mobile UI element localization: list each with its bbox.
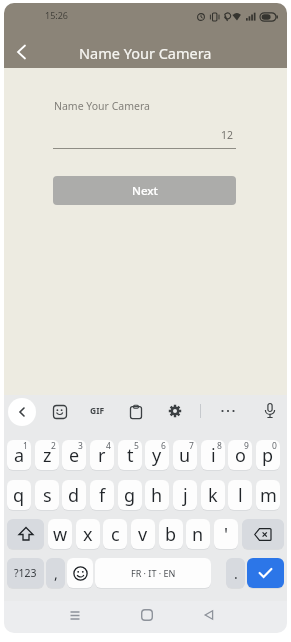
staticText: g (124, 483, 136, 508)
staticText: 6 (161, 440, 166, 452)
staticText: 15:26 (45, 9, 69, 21)
staticText: 3 (78, 440, 83, 452)
button[interactable]: o (228, 440, 252, 470)
staticText: 12 (221, 128, 234, 142)
button[interactable]: b (159, 519, 183, 549)
button[interactable] (8, 398, 36, 426)
button[interactable]: a (7, 440, 31, 470)
staticText: j (183, 483, 188, 508)
button[interactable]: f (90, 480, 114, 510)
staticText: o (235, 443, 246, 468)
staticText: 0 (272, 440, 277, 452)
staticText: ?123 (14, 566, 37, 580)
button[interactable]: m (256, 480, 280, 510)
button[interactable]: Next (53, 176, 236, 205)
button[interactable]: k (201, 480, 225, 510)
staticText: f (99, 483, 106, 508)
button[interactable] (4, 39, 40, 65)
staticText: ' (224, 522, 229, 547)
staticText: l (238, 483, 243, 508)
button[interactable] (7, 519, 44, 549)
staticText: 8 (217, 440, 222, 452)
staticText: h (151, 483, 163, 508)
staticText: 7 (189, 440, 194, 452)
staticText: b (165, 522, 177, 547)
button[interactable] (168, 404, 182, 418)
staticText: r (98, 443, 106, 468)
button[interactable]: p (256, 440, 280, 470)
staticText: . (234, 564, 238, 583)
staticText: , (54, 564, 58, 583)
staticText: Next (132, 183, 158, 199)
button[interactable]: ?123 (7, 558, 44, 588)
button[interactable] (220, 408, 236, 414)
button[interactable]: y (145, 440, 169, 470)
button[interactable] (53, 405, 67, 419)
staticText: i (211, 443, 216, 468)
staticText: v (138, 522, 148, 547)
button[interactable]: . (226, 558, 245, 588)
button[interactable]: r (90, 440, 114, 470)
button[interactable]: n (186, 519, 210, 549)
button[interactable]: l (228, 480, 252, 510)
button[interactable]: g (118, 480, 142, 510)
staticText: x (83, 522, 93, 547)
staticText: 4 (106, 440, 111, 452)
button[interactable] (130, 405, 142, 419)
button[interactable] (141, 609, 153, 621)
staticText: n (192, 522, 204, 547)
button[interactable]: d (62, 480, 86, 510)
staticText: e (69, 443, 80, 468)
staticText: m (260, 483, 277, 508)
staticText: w (53, 522, 68, 547)
button[interactable]: FR · IT · EN (95, 558, 211, 588)
staticText: u (179, 443, 191, 468)
button[interactable]: t (118, 440, 142, 470)
button[interactable] (204, 610, 214, 620)
staticText: 2 (51, 440, 56, 452)
staticText: 1 (23, 440, 28, 452)
staticText: a (14, 443, 25, 468)
button[interactable] (264, 403, 276, 419)
staticText: Name Your Camera (79, 43, 212, 63)
staticText: y (152, 443, 162, 468)
staticText: q (13, 483, 25, 508)
button[interactable]: , (46, 558, 65, 588)
button[interactable]: GIF (90, 405, 105, 417)
staticText: d (68, 483, 80, 508)
staticText: FR · IT · EN (131, 567, 176, 579)
staticText: 9 (244, 440, 249, 452)
button[interactable]: w (48, 519, 72, 549)
staticText: z (43, 443, 52, 468)
button[interactable] (67, 558, 93, 588)
button[interactable]: ' (214, 519, 238, 549)
button[interactable] (247, 558, 284, 588)
button[interactable]: c (103, 519, 127, 549)
button[interactable]: x (76, 519, 100, 549)
staticText: 5 (134, 440, 139, 452)
staticText: c (111, 522, 120, 547)
staticText: t (127, 443, 134, 468)
staticText: s (43, 483, 52, 508)
button[interactable]: q (7, 480, 31, 510)
button[interactable]: j (173, 480, 197, 510)
button[interactable]: s (35, 480, 59, 510)
button[interactable]: u (173, 440, 197, 470)
button[interactable]: e (62, 440, 86, 470)
button[interactable]: z (35, 440, 59, 470)
button[interactable]: v (131, 519, 155, 549)
button[interactable]: h (145, 480, 169, 510)
button[interactable]: i (201, 440, 225, 470)
staticText: k (208, 483, 218, 508)
staticText: Name Your Camera (54, 99, 150, 113)
staticText: p (262, 443, 274, 468)
button[interactable] (242, 519, 284, 549)
button[interactable] (70, 610, 80, 620)
